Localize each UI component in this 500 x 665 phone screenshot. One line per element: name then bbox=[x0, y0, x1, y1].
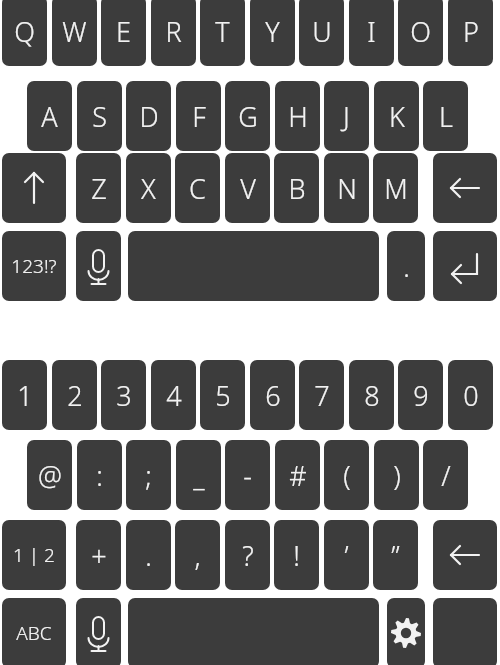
button[interactable]: 0 bbox=[448, 360, 493, 430]
staticText: Z bbox=[91, 170, 107, 207]
button[interactable]: 1 bbox=[2, 360, 47, 430]
button[interactable]: V bbox=[225, 153, 270, 223]
button[interactable]: S bbox=[77, 81, 122, 151]
button[interactable]: ’ bbox=[324, 520, 369, 590]
staticText: N bbox=[337, 170, 357, 207]
button[interactable]: Q bbox=[2, 0, 47, 66]
button[interactable]: ( bbox=[324, 440, 369, 510]
button[interactable]: _ bbox=[176, 440, 221, 510]
staticText: : bbox=[96, 457, 103, 494]
button[interactable]: R bbox=[151, 0, 196, 66]
staticText: 8 bbox=[364, 377, 380, 414]
button[interactable]: : bbox=[77, 440, 122, 510]
button[interactable]: 6 bbox=[250, 360, 295, 430]
staticText: ’ bbox=[344, 537, 349, 574]
button[interactable]: J bbox=[324, 81, 369, 151]
button[interactable]: ; bbox=[126, 440, 171, 510]
staticText: Y bbox=[265, 13, 280, 50]
button[interactable]: 4 bbox=[151, 360, 196, 430]
button[interactable]: C bbox=[175, 153, 220, 223]
button[interactable]: 2 bbox=[52, 360, 97, 430]
staticText: ” bbox=[391, 537, 400, 574]
button[interactable]: L bbox=[423, 81, 468, 151]
staticText: ? bbox=[242, 537, 254, 574]
staticText: P bbox=[463, 13, 479, 50]
button[interactable]: Shift bbox=[2, 153, 66, 223]
staticText: 1 | 2 bbox=[13, 542, 55, 568]
staticText: T bbox=[215, 13, 230, 50]
staticText: , bbox=[194, 537, 201, 574]
staticText: 1 bbox=[17, 377, 33, 414]
staticText: 4 bbox=[166, 377, 182, 414]
staticText: U bbox=[312, 13, 332, 50]
staticText: @ bbox=[38, 457, 62, 494]
button[interactable]: . bbox=[387, 231, 425, 301]
button[interactable]: ” bbox=[373, 520, 418, 590]
button[interactable]: H bbox=[275, 81, 320, 151]
button[interactable]: Space bbox=[128, 598, 379, 665]
staticText: D bbox=[139, 98, 159, 135]
button[interactable]: @ bbox=[27, 440, 72, 510]
button[interactable]: Voice input bbox=[76, 231, 121, 301]
button[interactable]: N bbox=[324, 153, 369, 223]
staticText: V bbox=[240, 170, 256, 207]
button[interactable]: / bbox=[423, 440, 468, 510]
staticText: 5 bbox=[215, 377, 231, 414]
button[interactable]: ) bbox=[374, 440, 419, 510]
button[interactable]: 3 bbox=[101, 360, 146, 430]
button[interactable]: , bbox=[175, 520, 220, 590]
button[interactable]: T bbox=[200, 0, 245, 66]
button[interactable]: 7 bbox=[299, 360, 344, 430]
button[interactable]: Space bbox=[128, 231, 379, 301]
staticText: F bbox=[192, 98, 206, 135]
button[interactable]: # bbox=[275, 440, 320, 510]
button[interactable]: I bbox=[349, 0, 394, 66]
button[interactable]: Backspace bbox=[433, 153, 497, 223]
button[interactable]: W bbox=[52, 0, 97, 66]
button[interactable]: K bbox=[374, 81, 419, 151]
button[interactable]: 123!? bbox=[2, 231, 66, 301]
button[interactable]: 9 bbox=[398, 360, 443, 430]
button[interactable]: Settings bbox=[387, 598, 425, 665]
staticText: _ bbox=[193, 457, 205, 494]
staticText: ABC bbox=[16, 620, 52, 646]
staticText: 6 bbox=[265, 377, 281, 414]
button[interactable]: M bbox=[373, 153, 418, 223]
button[interactable]: D bbox=[126, 81, 171, 151]
button[interactable]: Z bbox=[76, 153, 121, 223]
button[interactable]: 5 bbox=[200, 360, 245, 430]
button[interactable]: O bbox=[398, 0, 443, 66]
button[interactable]: ! bbox=[274, 520, 319, 590]
staticText: S bbox=[92, 98, 107, 135]
staticText: 3 bbox=[116, 377, 132, 414]
staticText: 0 bbox=[463, 377, 479, 414]
button[interactable]: Y bbox=[250, 0, 295, 66]
button[interactable]: ABC bbox=[2, 598, 66, 665]
staticText: ! bbox=[293, 537, 300, 574]
button[interactable]: Enter bbox=[433, 598, 497, 665]
button[interactable]: ? bbox=[225, 520, 270, 590]
button[interactable]: 1 | 2 bbox=[2, 520, 66, 590]
staticText: R bbox=[165, 13, 182, 50]
button[interactable]: - bbox=[225, 440, 270, 510]
button[interactable]: Enter bbox=[433, 231, 497, 301]
staticText: M bbox=[384, 170, 408, 207]
button[interactable]: U bbox=[299, 0, 344, 66]
button[interactable]: 8 bbox=[349, 360, 394, 430]
button[interactable]: Voice input bbox=[76, 598, 121, 665]
button[interactable]: X bbox=[126, 153, 171, 223]
staticText: H bbox=[288, 98, 308, 135]
button[interactable]: + bbox=[76, 520, 121, 590]
button[interactable]: G bbox=[225, 81, 270, 151]
button[interactable]: F bbox=[176, 81, 221, 151]
button[interactable]: . bbox=[126, 520, 171, 590]
staticText: J bbox=[343, 98, 350, 135]
button[interactable]: B bbox=[274, 153, 319, 223]
staticText: + bbox=[91, 537, 107, 574]
staticText: ) bbox=[393, 457, 401, 494]
staticText: / bbox=[441, 457, 451, 494]
button[interactable]: P bbox=[448, 0, 493, 66]
button[interactable]: Backspace bbox=[433, 520, 497, 590]
button[interactable]: E bbox=[101, 0, 146, 66]
button[interactable]: A bbox=[27, 81, 72, 151]
